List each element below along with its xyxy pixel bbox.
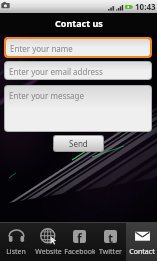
staticText: 10:43 — [135, 1, 156, 12]
staticText: Website — [35, 247, 62, 257]
button[interactable]: Listen — [0, 223, 32, 261]
button[interactable]: Facebook — [64, 223, 95, 261]
button[interactable]: Send — [54, 136, 103, 151]
staticText: Enter your message — [9, 90, 84, 101]
staticText: Facebook — [64, 247, 95, 257]
staticText: Listen — [6, 247, 26, 257]
button[interactable]: Website — [32, 223, 64, 261]
staticText: Contact us — [55, 17, 103, 29]
button[interactable]: Enter your email address — [5, 62, 151, 79]
staticText: Enter your email address — [9, 66, 103, 77]
button[interactable]: Contact — [126, 223, 157, 261]
button[interactable]: Twitter — [95, 223, 126, 261]
button[interactable]: Enter your name — [6, 39, 150, 56]
staticText: Twitter — [99, 247, 122, 257]
staticText: Enter your name — [10, 43, 73, 54]
staticText: t — [108, 230, 114, 243]
button[interactable]: Enter your message — [5, 86, 151, 131]
staticText: f — [77, 230, 82, 243]
staticText: Contact — [129, 247, 155, 257]
staticText: Send — [69, 138, 88, 149]
